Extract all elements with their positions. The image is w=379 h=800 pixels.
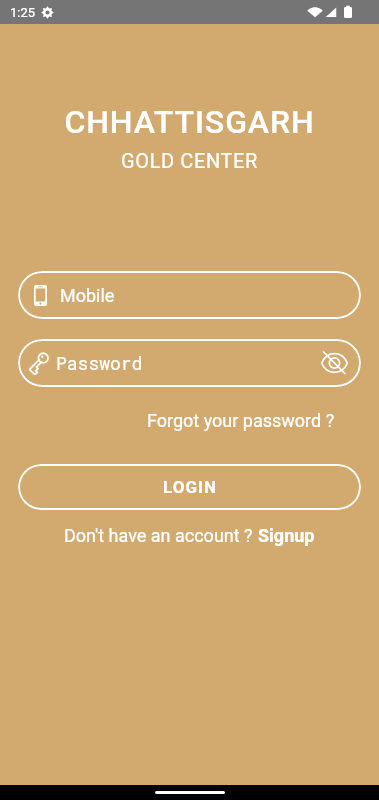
button[interactable]: Password: [18, 339, 361, 387]
staticText: Mobile: [60, 285, 115, 306]
staticText: Signup: [258, 525, 315, 546]
staticText: CHHATTISGARH: [0, 103, 379, 141]
button[interactable]: Forgot your password ?: [143, 406, 339, 435]
staticText: Forgot your password ?: [147, 410, 335, 431]
staticText: LOGIN: [163, 477, 217, 497]
staticText: Don't have an account ?: [64, 525, 258, 546]
staticText: GOLD CENTER: [0, 149, 379, 172]
staticText: Password: [56, 351, 143, 375]
button[interactable]: LOGIN: [18, 464, 361, 510]
button[interactable]: Signup: [258, 525, 315, 546]
button[interactable]: Show password: [318, 347, 350, 379]
button[interactable]: Mobile: [18, 271, 361, 319]
staticText: 1:25: [10, 5, 36, 20]
